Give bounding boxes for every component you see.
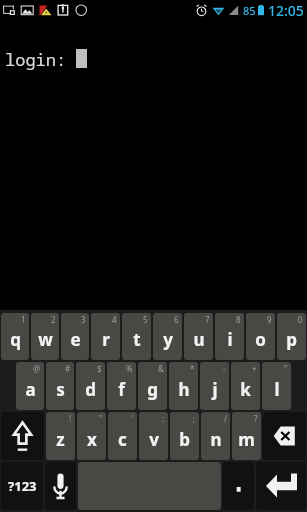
button[interactable]: $ [76, 362, 105, 410]
staticText: 5 [143, 314, 148, 325]
staticText: n [210, 428, 222, 451]
staticText: * [190, 363, 195, 374]
staticText: d [85, 378, 96, 401]
button[interactable]: ?123 [1, 462, 43, 510]
staticText: login: [5, 48, 67, 71]
button[interactable]: ! [46, 412, 75, 460]
staticText: % [126, 363, 133, 374]
staticText: t [133, 328, 141, 351]
button[interactable]: * [169, 362, 198, 410]
staticText: u [193, 328, 205, 351]
staticText: 6 [174, 314, 179, 325]
button[interactable]: Voice input [45, 462, 76, 510]
staticText: o [255, 328, 266, 351]
staticText: r [102, 328, 110, 351]
staticText: 85 [243, 3, 256, 18]
staticText: b [179, 428, 190, 451]
button[interactable]: 8 [215, 313, 244, 360]
staticText: & [158, 363, 164, 374]
button[interactable]: # [46, 362, 74, 410]
button[interactable]: Backspace [263, 412, 306, 460]
staticText: w [38, 328, 53, 351]
staticText: : [162, 413, 165, 424]
button[interactable]: : [139, 412, 168, 460]
button[interactable]: + [231, 362, 260, 410]
staticText: ? [254, 413, 258, 424]
button[interactable]: 6 [153, 313, 182, 360]
staticText: g [147, 378, 158, 401]
button[interactable]: @ [16, 362, 44, 410]
staticText: 12:05 [268, 1, 304, 20]
staticText: m [238, 428, 255, 451]
staticText: x [87, 428, 97, 451]
staticText: f [118, 378, 125, 401]
button[interactable]: % [107, 362, 136, 410]
staticText: a [25, 378, 36, 401]
staticText: i [227, 328, 233, 351]
staticText: ! [69, 413, 72, 424]
staticText: ; [193, 413, 196, 424]
staticText: # [65, 363, 71, 374]
staticText: - [223, 363, 226, 374]
staticText: 7 [205, 314, 210, 325]
staticText: 0 [298, 314, 303, 325]
button[interactable]: " [262, 362, 291, 410]
button[interactable]: ; [170, 412, 199, 460]
button[interactable]: Enter [256, 462, 306, 510]
button[interactable]: - [200, 362, 229, 410]
staticText: 1 [21, 314, 26, 325]
staticText: " [99, 413, 103, 424]
staticText: y [163, 328, 173, 351]
staticText: 9 [267, 314, 272, 325]
button[interactable]: ? [232, 412, 261, 460]
staticText: v [149, 428, 159, 451]
button[interactable]: Shift [1, 412, 44, 460]
button[interactable]: " [77, 412, 106, 460]
button[interactable]: 5 [122, 313, 151, 360]
button[interactable]: 7 [184, 313, 213, 360]
button[interactable]: / [201, 412, 230, 460]
button[interactable]: Period [223, 462, 254, 510]
staticText: @ [33, 363, 41, 374]
staticText: k [240, 378, 251, 401]
staticText: ?123 [8, 477, 37, 495]
staticText: q [10, 328, 21, 351]
staticText: h [178, 378, 190, 401]
staticText: c [118, 428, 127, 451]
button[interactable]: & [138, 362, 167, 410]
button[interactable]: 4 [91, 313, 120, 360]
button[interactable]: 3 [61, 313, 89, 360]
staticText: 2 [51, 314, 56, 325]
staticText: ' [132, 413, 134, 424]
button[interactable]: 9 [246, 313, 275, 360]
staticText: 8 [236, 314, 241, 325]
staticText: p [286, 328, 297, 351]
staticText: " [284, 363, 288, 374]
button[interactable]: ' [108, 412, 137, 460]
staticText: + [252, 363, 257, 374]
button[interactable]: 1 [1, 313, 29, 360]
staticText: e [70, 328, 81, 351]
button[interactable]: 2 [31, 313, 59, 360]
staticText: 3 [81, 314, 86, 325]
staticText: s [56, 378, 65, 401]
staticText: $ [97, 363, 102, 374]
button[interactable]: 0 [277, 313, 306, 360]
staticText: l [274, 378, 280, 401]
staticText: j [212, 378, 218, 401]
staticText: 4 [112, 314, 117, 325]
staticText: z [56, 428, 65, 451]
staticText: / [224, 413, 227, 424]
